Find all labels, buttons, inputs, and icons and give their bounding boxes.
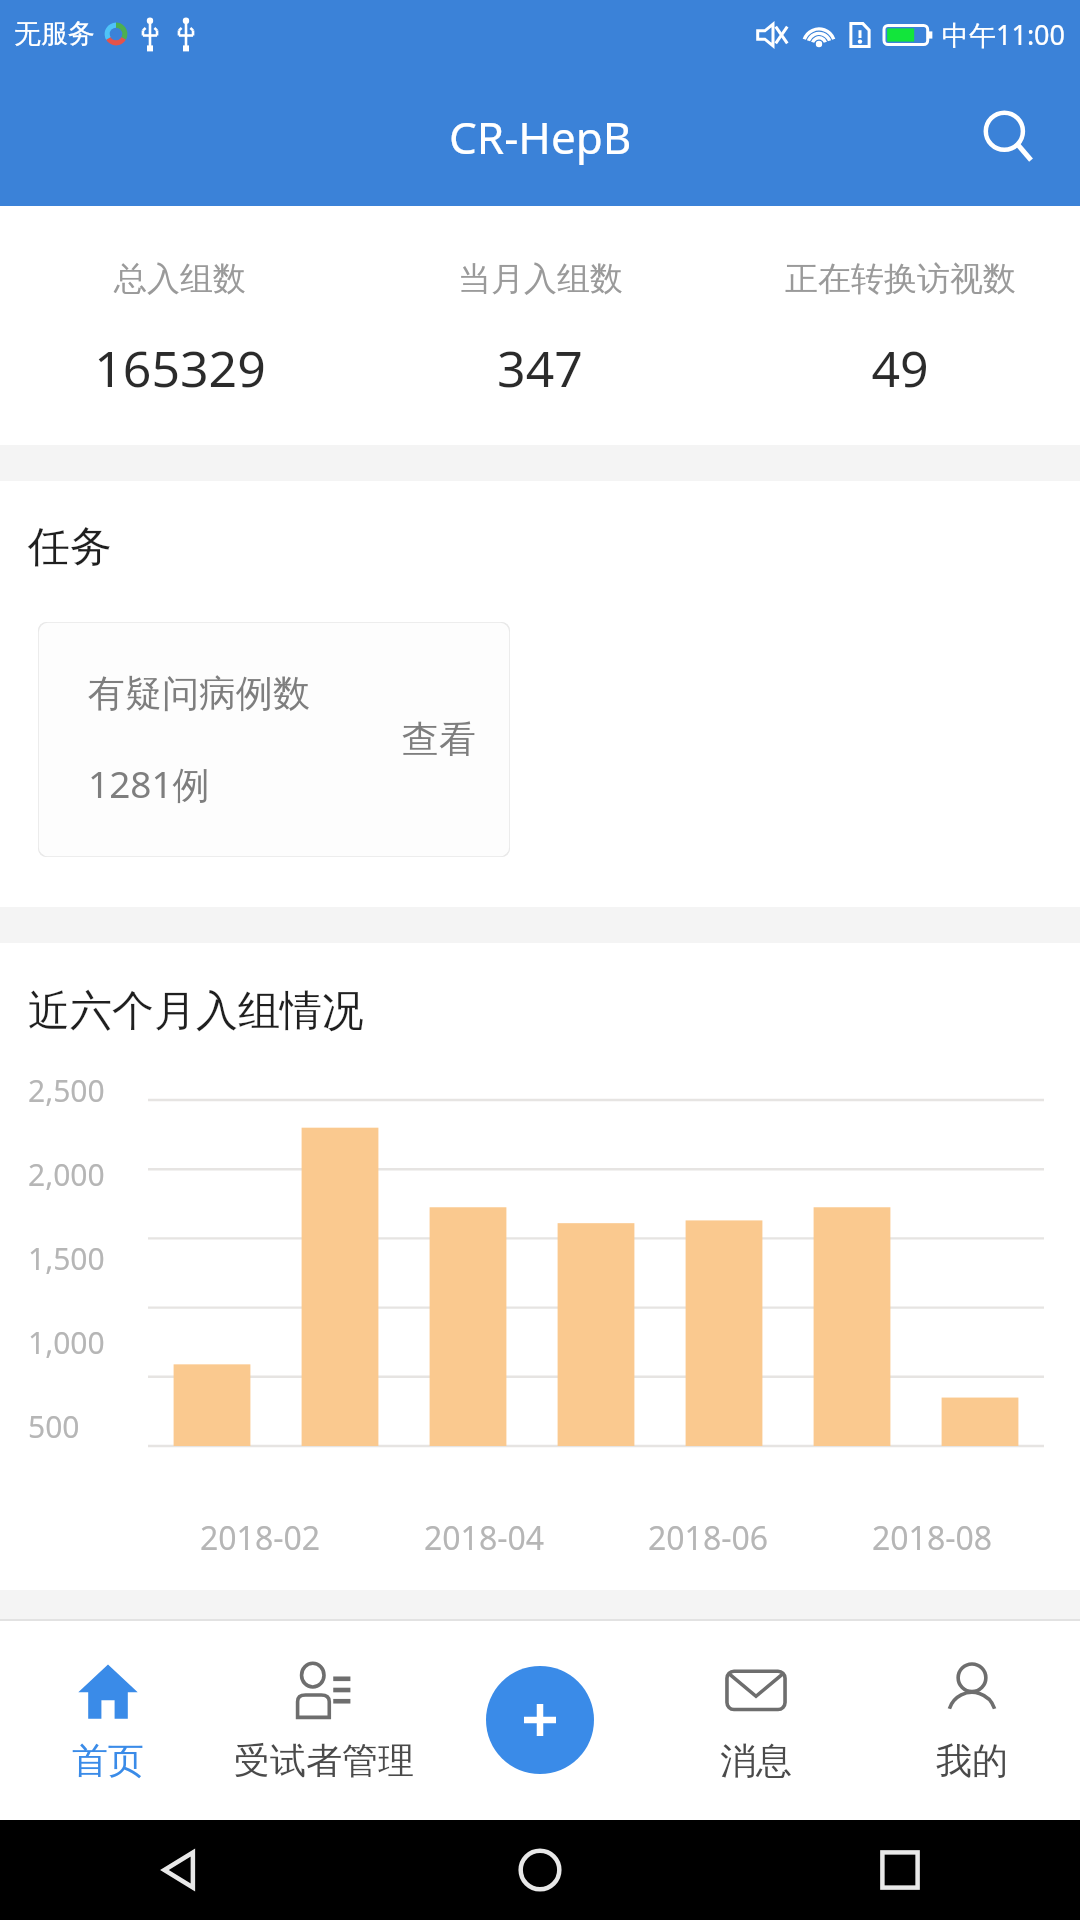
staticText: 1281例: [88, 758, 210, 809]
staticText: 2018-02: [200, 1516, 321, 1560]
staticText: 49: [871, 334, 929, 402]
button[interactable]: 总入组数: [0, 206, 360, 445]
staticText: 首页: [72, 1738, 144, 1783]
button[interactable]: 查看: [396, 710, 482, 769]
button[interactable]: 有疑问病例数: [38, 622, 510, 857]
staticText: 中午11:00: [942, 16, 1066, 53]
button[interactable]: 正在转换访视数: [720, 206, 1080, 445]
button[interactable]: 当月入组数: [360, 206, 720, 445]
staticText: 总入组数: [114, 258, 246, 300]
staticText: 2018-06: [648, 1516, 769, 1560]
button[interactable]: 消息: [648, 1620, 864, 1820]
button[interactable]: Recents: [862, 1832, 938, 1908]
staticText: 500: [28, 1406, 80, 1447]
button[interactable]: 我的: [864, 1620, 1080, 1820]
staticText: 1,500: [28, 1238, 105, 1279]
staticText: 2018-04: [424, 1516, 545, 1560]
staticText: 2018-08: [872, 1516, 993, 1560]
staticText: 2,500: [28, 1070, 105, 1111]
staticText: 我的: [936, 1738, 1008, 1783]
button[interactable]: Add: [486, 1666, 594, 1774]
staticText: 有疑问病例数: [88, 670, 310, 717]
staticText: 无服务: [14, 17, 95, 51]
staticText: 受试者管理: [234, 1738, 414, 1783]
staticText: 2,000: [28, 1154, 105, 1195]
button[interactable]: Home: [501, 1831, 579, 1909]
staticText: CR-HepB: [449, 107, 632, 167]
staticText: 查看: [402, 716, 476, 763]
staticText: 当月入组数: [458, 258, 623, 300]
staticText: 消息: [720, 1738, 792, 1783]
staticText: 1,000: [28, 1322, 105, 1363]
staticText: 347: [497, 334, 583, 402]
staticText: 正在转换访视数: [785, 258, 1016, 300]
staticText: 近六个月入组情况: [28, 985, 364, 1038]
button[interactable]: 首页: [0, 1620, 216, 1820]
staticText: 任务: [28, 521, 112, 574]
button[interactable]: Search: [972, 100, 1046, 174]
button[interactable]: Back: [141, 1831, 219, 1909]
staticText: 165329: [94, 334, 266, 402]
button[interactable]: 受试者管理: [216, 1620, 432, 1820]
